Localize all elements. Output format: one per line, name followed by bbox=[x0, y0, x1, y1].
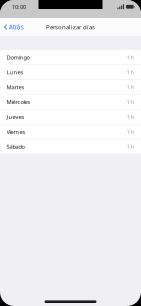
staticText: Miércoles bbox=[6, 98, 30, 106]
staticText: 1 h bbox=[126, 68, 134, 76]
staticText: 1 h bbox=[126, 143, 134, 150]
staticText: Martes bbox=[6, 83, 24, 91]
staticText: Lunes bbox=[6, 68, 23, 76]
button[interactable]: Miércoles bbox=[0, 95, 141, 110]
button[interactable]: Martes bbox=[0, 80, 141, 95]
staticText: Sábado bbox=[6, 143, 24, 150]
staticText: Domingo bbox=[6, 53, 29, 61]
button[interactable]: Atrás bbox=[0, 19, 27, 35]
button[interactable]: Domingo bbox=[0, 50, 141, 65]
staticText: 1 h bbox=[126, 98, 134, 106]
staticText: Atrás bbox=[9, 23, 24, 31]
button[interactable]: Lunes bbox=[0, 65, 141, 80]
staticText: Personalizar días bbox=[46, 23, 95, 31]
staticText: 10:00 bbox=[12, 3, 26, 11]
button[interactable]: Jueves bbox=[0, 110, 141, 124]
staticText: 1 h bbox=[126, 113, 134, 121]
button[interactable]: Viernes bbox=[0, 124, 141, 139]
staticText: 1 h bbox=[126, 128, 134, 135]
staticText: Jueves bbox=[6, 113, 24, 121]
staticText: Viernes bbox=[6, 128, 25, 135]
staticText: 1 h bbox=[126, 53, 134, 61]
button[interactable]: Sábado bbox=[0, 139, 141, 154]
staticText: 1 h bbox=[126, 83, 134, 91]
